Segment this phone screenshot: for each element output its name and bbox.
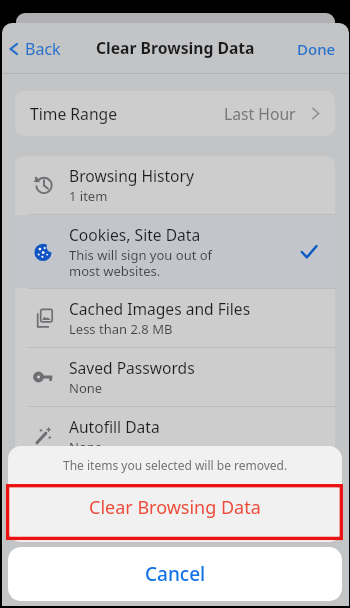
staticText: Back: [25, 38, 61, 60]
staticText: Cancel: [145, 561, 206, 587]
staticText: Less than 2.8 MB: [69, 320, 173, 338]
staticText: Clear Browsing Data: [96, 37, 255, 58]
button[interactable]: Time Range: [15, 91, 335, 136]
staticText: The items you selected will be removed.: [63, 457, 288, 473]
button[interactable]: Back: [5, 34, 63, 64]
button[interactable]: Cached Images and Files: [15, 289, 335, 347]
button[interactable]: Browsing History: [15, 156, 335, 214]
button[interactable]: Cookies, Site Data: [15, 215, 335, 288]
staticText: Last Hour: [224, 103, 296, 124]
staticText: None: [69, 438, 103, 456]
staticText: Cached Images and Files: [69, 298, 251, 319]
button[interactable]: Saved Passwords: [15, 348, 335, 406]
button[interactable]: Clear Browsing Data: [8, 485, 342, 542]
button[interactable]: Done: [295, 37, 338, 61]
button[interactable]: Cancel: [8, 547, 342, 601]
staticText: Cookies, Site Data: [69, 224, 201, 245]
button[interactable]: Autofill Data: [15, 407, 335, 465]
staticText: None: [69, 379, 103, 397]
staticText: This will sign you out of most websites.: [69, 246, 213, 280]
staticText: Autofill Data: [69, 416, 160, 437]
other: Back: [7, 42, 21, 56]
staticText: Browsing History: [69, 165, 194, 186]
staticText: Saved Passwords: [69, 357, 195, 378]
staticText: 1 item: [69, 187, 108, 205]
staticText: Clear Browsing Data: [89, 495, 261, 520]
staticText: Done: [297, 39, 336, 59]
other: Selected: [300, 243, 318, 261]
other: Choose time range: [309, 107, 322, 120]
staticText: Time Range: [30, 103, 118, 124]
